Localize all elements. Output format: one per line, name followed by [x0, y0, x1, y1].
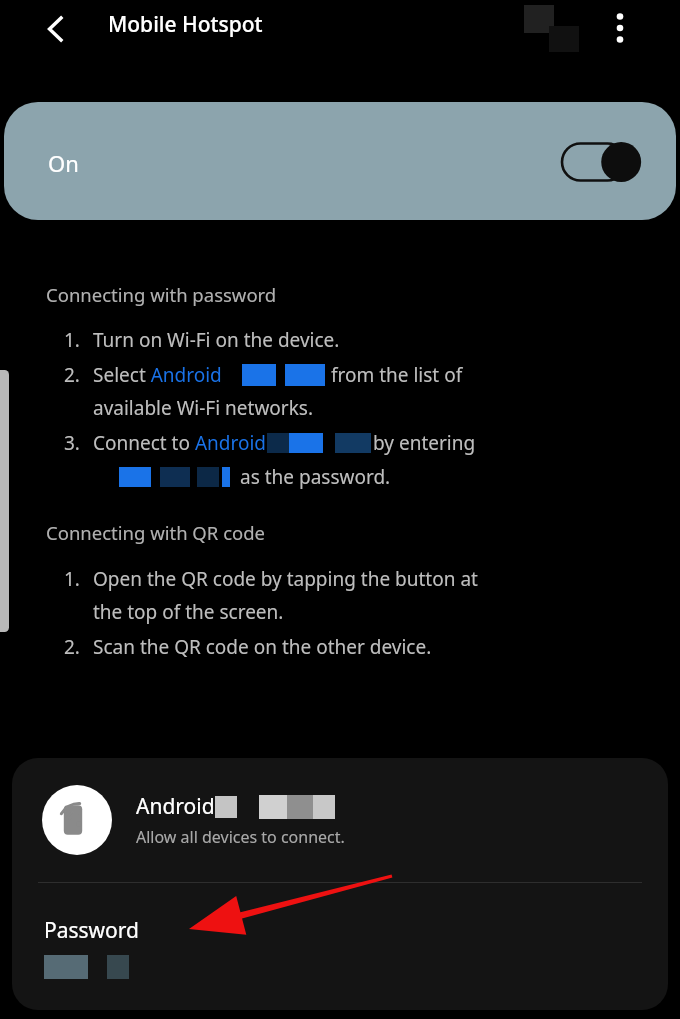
staticText: from the list of [331, 362, 463, 388]
button[interactable]: Back [34, 8, 76, 50]
staticText: by entering [373, 430, 476, 456]
staticText: Password [44, 916, 139, 945]
staticText: 1. [64, 566, 80, 592]
staticText: the top of the screen. [93, 599, 284, 625]
staticText: Android [136, 792, 215, 821]
staticText: as the password. [240, 464, 391, 490]
staticText: 2. [64, 634, 80, 660]
staticText: 2. [64, 362, 80, 388]
button[interactable]: Password [12, 883, 668, 993]
staticText: Mobile Hotspot [108, 10, 263, 39]
button[interactable]: Android [12, 758, 668, 882]
staticText: On [48, 148, 79, 178]
staticText: Connect to Android [93, 430, 267, 456]
staticText: Scan the QR code on the other device. [93, 634, 432, 660]
staticText: Select Android [93, 362, 222, 388]
staticText: Connecting with password [46, 282, 277, 307]
staticText: available Wi-Fi networks. [93, 395, 314, 421]
button[interactable]: On [4, 102, 676, 220]
staticText: 1. [64, 327, 80, 353]
staticText: Connecting with QR code [46, 520, 266, 545]
staticText: 3. [64, 430, 80, 456]
staticText: Allow all devices to connect. [136, 826, 345, 848]
button[interactable]: More options [598, 6, 642, 50]
staticText: Turn on Wi-Fi on the device. [93, 327, 340, 353]
staticText: Open the QR code by tapping the button a… [93, 566, 478, 592]
